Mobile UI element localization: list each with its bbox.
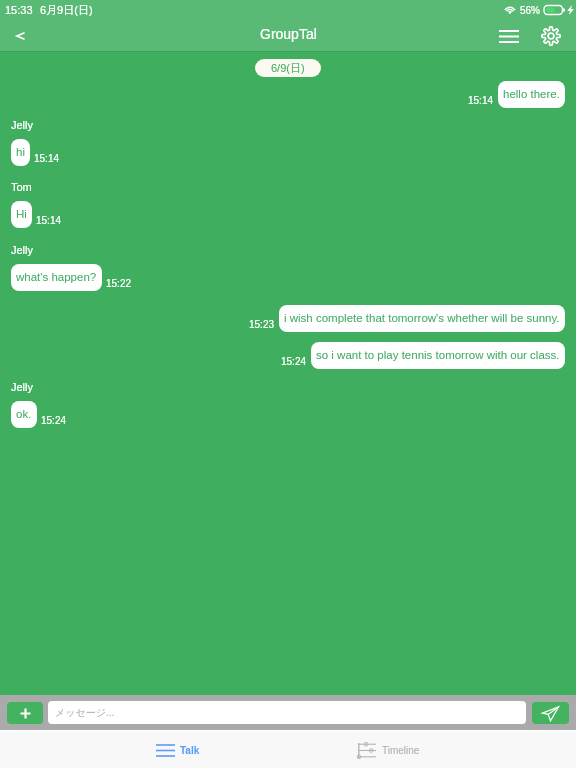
staticText: hello there.	[503, 88, 560, 101]
staticText: what's happen?	[16, 271, 97, 284]
staticText: 15:22	[106, 278, 132, 289]
staticText: so i want to play tennis tomorrow with o…	[316, 349, 560, 362]
staticText: hi	[16, 146, 25, 159]
staticText: ok.	[16, 408, 32, 421]
staticText: 6/9(日)	[271, 61, 305, 75]
staticText: 15:24	[281, 356, 307, 367]
button[interactable]: Timeline	[288, 732, 576, 768]
button[interactable]: Send	[532, 702, 569, 724]
staticText: Talk	[180, 745, 200, 756]
staticText: Hi	[16, 208, 27, 221]
staticText: 6月9日(日)	[40, 3, 93, 17]
staticText: Timeline	[382, 745, 420, 756]
staticText: メッセージ...	[55, 706, 115, 719]
button[interactable]: 6/9(日)	[255, 59, 321, 77]
staticText: 15:24	[41, 415, 67, 426]
staticText: Jelly	[11, 381, 34, 393]
button[interactable]: ok.	[11, 401, 37, 428]
button[interactable]: what's happen?	[11, 264, 102, 291]
button[interactable]: Back	[0, 20, 40, 52]
staticText: i wish complete that tomorrow's whether …	[284, 312, 560, 325]
button[interactable]: Talk	[0, 732, 288, 768]
staticText: 15:14	[34, 153, 60, 164]
staticText: Jelly	[11, 119, 34, 131]
staticText: 15:14	[36, 215, 62, 226]
button[interactable]: メッセージ...	[48, 701, 526, 724]
staticText: 56%	[520, 5, 541, 16]
button[interactable]: Settings	[530, 20, 572, 52]
button[interactable]: so i want to play tennis tomorrow with o…	[311, 342, 565, 369]
button[interactable]: Add attachment	[7, 702, 43, 724]
button[interactable]: i wish complete that tomorrow's whether …	[279, 305, 565, 332]
staticText: 15:14	[468, 95, 494, 106]
staticText: Jelly	[11, 244, 34, 256]
button[interactable]: Hi	[11, 201, 32, 228]
staticText: 15:23	[249, 319, 275, 330]
staticText: 15:33	[5, 4, 33, 16]
staticText: GroupTal	[260, 26, 317, 42]
button[interactable]: hello there.	[498, 81, 565, 108]
staticText: Tom	[11, 181, 32, 193]
button[interactable]: hi	[11, 139, 30, 166]
button[interactable]: Menu	[488, 20, 530, 52]
